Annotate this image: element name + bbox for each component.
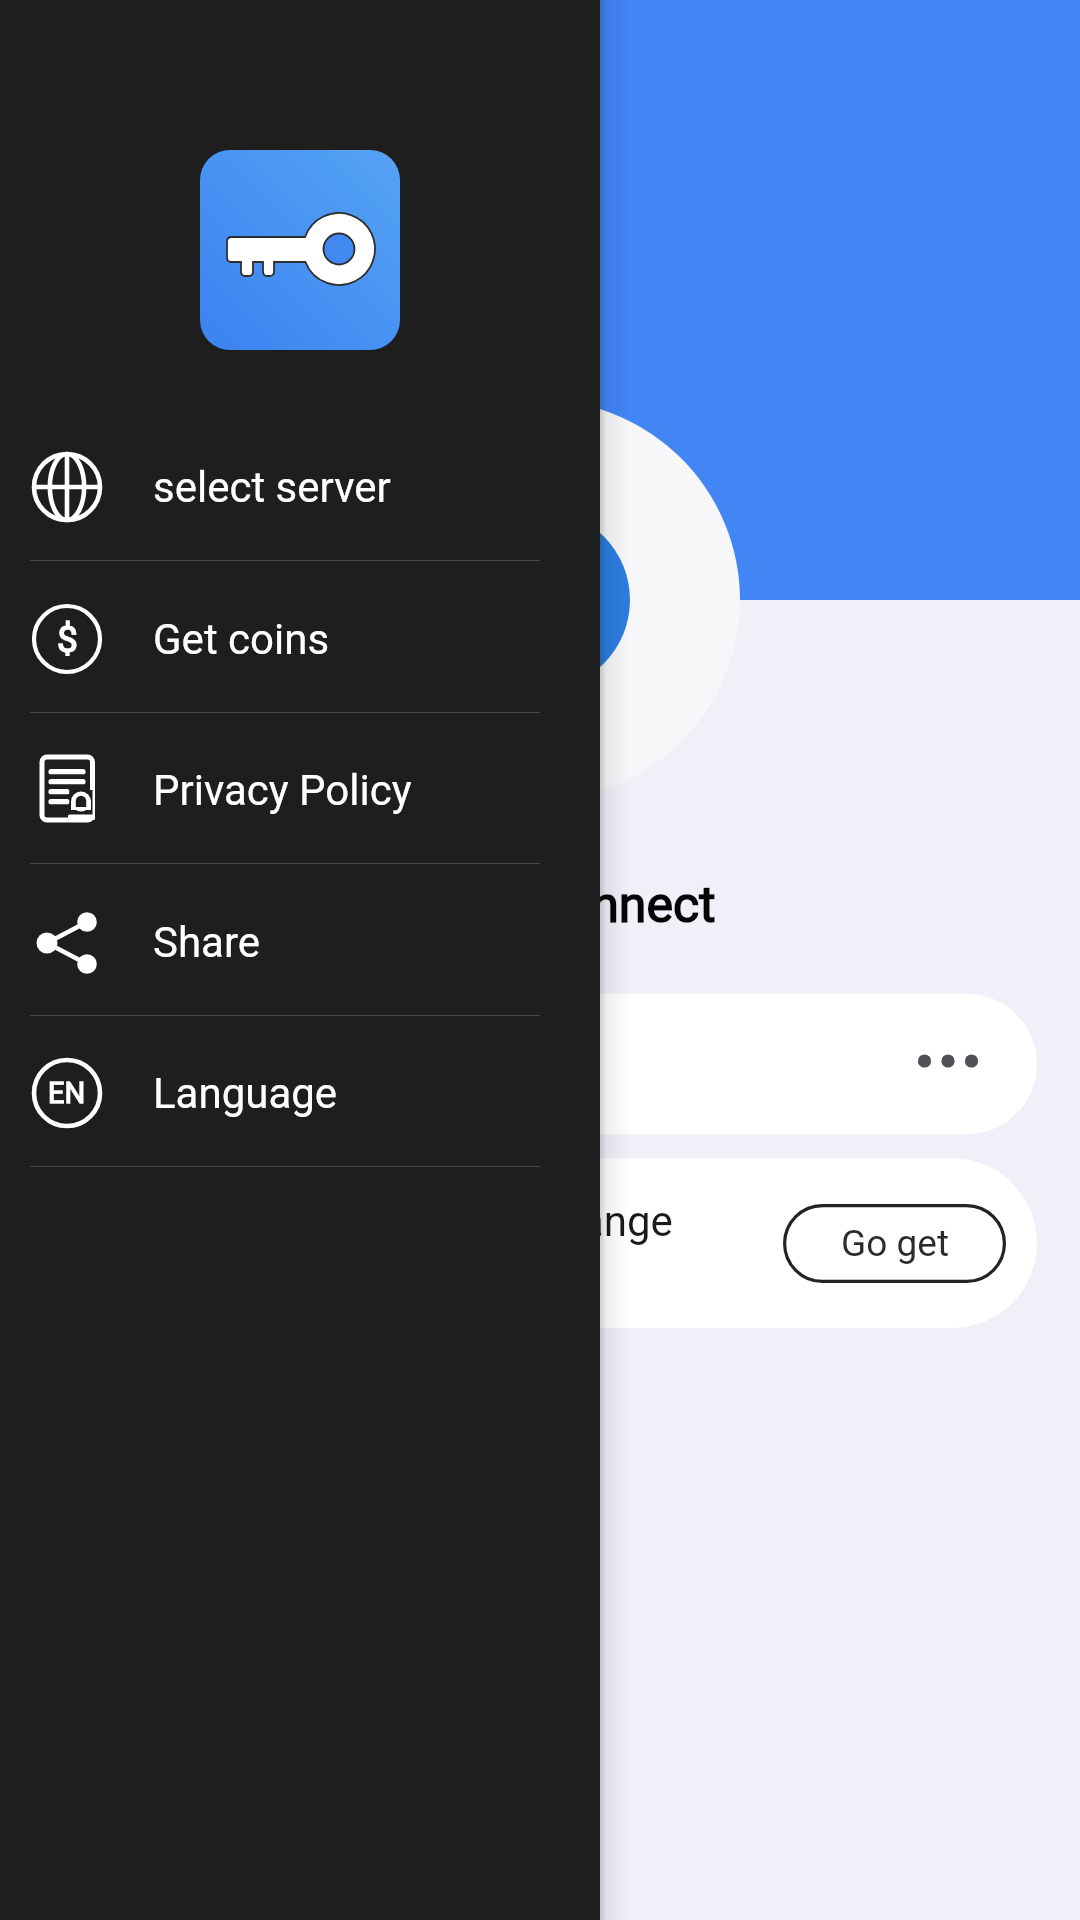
button[interactable]: EN [0, 1017, 600, 1169]
staticText: Best location [103, 1040, 348, 1089]
staticText: EN [48, 1076, 86, 1110]
button[interactable]: More options [906, 1034, 990, 1094]
button[interactable]: $ [0, 563, 600, 715]
button[interactable]: VPN app icon [200, 150, 400, 350]
staticText: Tap to connect [385, 876, 716, 935]
staticText: select server [153, 463, 391, 512]
staticText: Go get [841, 1222, 949, 1265]
button[interactable]: $ [43, 1158, 1037, 1328]
staticText: Privacy Policy [153, 766, 412, 815]
button[interactable]: Connect [340, 400, 740, 800]
button[interactable]: Privacy Policy [0, 714, 600, 866]
staticText: Share [153, 918, 261, 967]
button[interactable]: Share [0, 866, 600, 1018]
staticText: Language [153, 1069, 338, 1118]
staticText: $ [57, 618, 78, 661]
button[interactable]: Best location [43, 994, 1037, 1134]
staticText: Coin exchange [398, 1197, 673, 1246]
button[interactable]: Go get [783, 1204, 1006, 1283]
button[interactable]: select server [0, 411, 600, 563]
staticText: Get coins [153, 615, 330, 664]
